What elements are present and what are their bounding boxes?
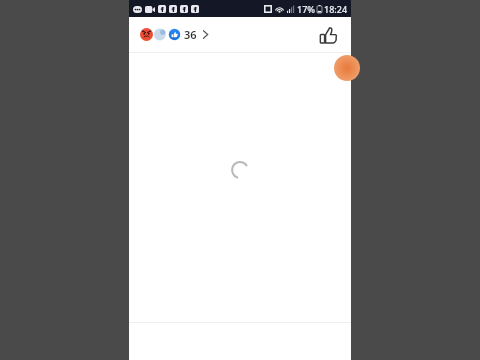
button[interactable]: 36 bbox=[138, 23, 212, 46]
button[interactable]: Like bbox=[314, 21, 342, 49]
staticText: 17% bbox=[297, 3, 315, 15]
staticText: 18:24 bbox=[324, 3, 348, 15]
staticText: 36 bbox=[184, 27, 197, 42]
